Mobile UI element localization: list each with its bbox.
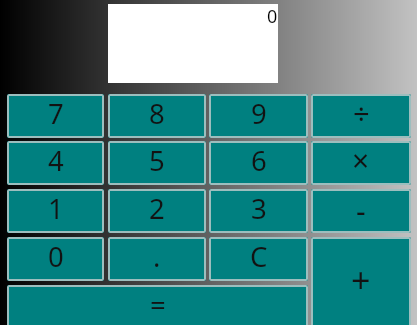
button[interactable]: C	[209, 237, 308, 281]
staticText: -	[356, 190, 366, 231]
button[interactable]: -	[311, 189, 411, 233]
staticText: 2	[149, 190, 165, 227]
button[interactable]: 2	[108, 189, 206, 233]
staticText: 0	[48, 238, 64, 275]
staticText: =	[150, 286, 166, 323]
staticText: 8	[149, 95, 165, 132]
staticText: 5	[149, 142, 165, 179]
staticText: 0	[267, 4, 278, 29]
staticText: ×	[352, 141, 370, 181]
staticText: 6	[251, 142, 267, 179]
button[interactable]: =	[7, 285, 308, 325]
button[interactable]: +	[311, 237, 411, 325]
button[interactable]: ×	[311, 141, 411, 185]
staticText: ÷	[353, 94, 370, 133]
staticText: +	[351, 257, 371, 303]
button[interactable]: 0	[7, 237, 104, 281]
staticText: 9	[251, 95, 267, 132]
staticText: C	[250, 238, 268, 275]
button[interactable]: 4	[7, 141, 104, 185]
button[interactable]: 3	[209, 189, 308, 233]
button[interactable]: 6	[209, 141, 308, 185]
staticText: 1	[48, 190, 64, 227]
button[interactable]: 9	[209, 94, 308, 138]
staticText: 7	[48, 95, 64, 132]
button[interactable]: .	[108, 237, 206, 281]
button[interactable]: 8	[108, 94, 206, 138]
staticText: 4	[48, 142, 64, 179]
button[interactable]: 7	[7, 94, 104, 138]
button[interactable]: 1	[7, 189, 104, 233]
staticText: .	[153, 238, 161, 275]
staticText: 3	[251, 190, 267, 227]
button[interactable]: ÷	[311, 94, 411, 138]
button[interactable]: 5	[108, 141, 206, 185]
